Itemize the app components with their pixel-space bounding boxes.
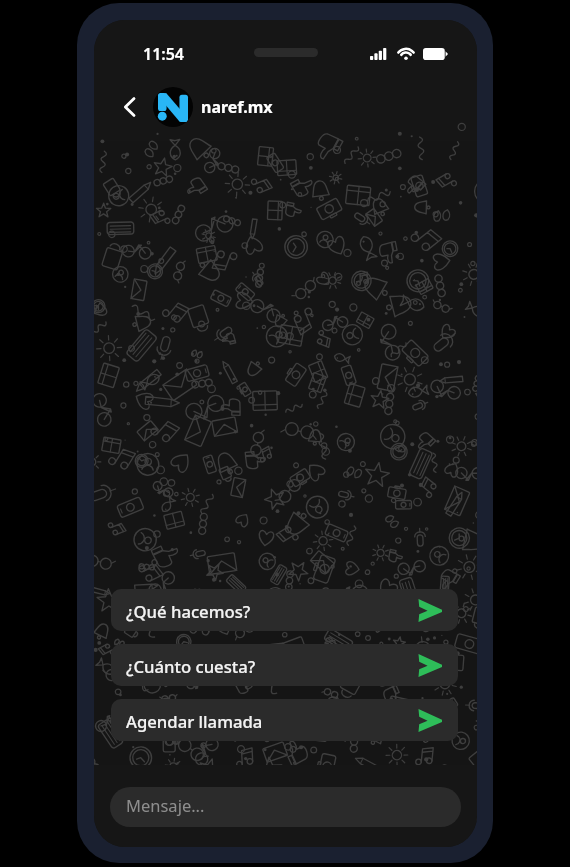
button[interactable]: Back (111, 89, 147, 125)
button[interactable]: Mensaje... (110, 787, 461, 827)
staticText: ¿Cuánto cuesta? (126, 655, 256, 678)
staticText: Agendar llamada (126, 710, 263, 733)
button[interactable]: Agendar llamada (111, 699, 458, 741)
staticText: Mensaje... (126, 794, 205, 816)
staticText: 11:54 (143, 43, 185, 65)
staticText: ¿Qué hacemos? (126, 600, 251, 623)
staticText: naref.mx (201, 96, 273, 118)
button[interactable]: naref.mx (153, 80, 477, 141)
button[interactable]: ¿Qué hacemos? (111, 589, 458, 631)
button[interactable]: ¿Cuánto cuesta? (111, 644, 458, 686)
